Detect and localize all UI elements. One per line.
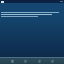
button[interactable]: Profile: [50, 59, 54, 64]
button[interactable]: Library: [37, 59, 41, 64]
button[interactable]: [1, 12, 63, 17]
button[interactable]: Search: [23, 59, 27, 64]
button[interactable]: Home: [10, 59, 14, 64]
